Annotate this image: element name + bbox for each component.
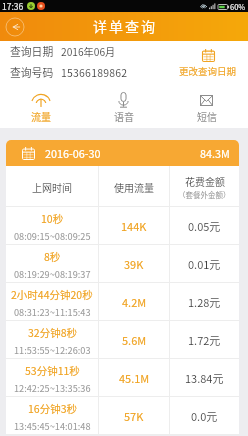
staticText: 57K <box>124 408 144 424</box>
staticText: 16分钟3秒 <box>28 401 77 416</box>
staticText: 0.05元 <box>188 218 221 234</box>
staticText: 53分钟11秒 <box>25 363 80 378</box>
button[interactable]: 32分钟8秒 <box>6 321 239 359</box>
staticText: 1.72元 <box>188 332 221 348</box>
staticText: 流量 <box>31 109 51 123</box>
button[interactable]: 流量 <box>0 81 82 128</box>
staticText: 2016-06-30 <box>45 145 101 161</box>
staticText: 语音 <box>114 109 134 123</box>
staticText: 13.84元 <box>185 370 224 386</box>
staticText: 84.3M <box>200 145 230 161</box>
staticText: 32分钟8秒 <box>28 325 77 340</box>
button[interactable]: 2016-06-30 <box>6 140 239 166</box>
button[interactable]: 53分钟11秒 <box>6 359 239 397</box>
button[interactable]: 语音 <box>82 81 165 128</box>
staticText: 2小时44分钟20秒 <box>11 287 93 302</box>
staticText: 更改查询日期 <box>179 64 237 78</box>
staticText: 15366189862 <box>61 65 128 80</box>
staticText: 查询号码 <box>10 64 54 80</box>
staticText: 查询日期 <box>10 43 54 59</box>
staticText: （套餐外金额） <box>178 189 231 200</box>
staticText: 10秒 <box>41 211 64 226</box>
staticText: 0.01元 <box>188 256 221 272</box>
button[interactable]: 10秒 <box>6 207 239 245</box>
staticText: 08:19:29~08:19:37 <box>14 267 91 280</box>
button[interactable]: Back <box>4 16 26 38</box>
staticText: 45.1M <box>119 370 150 386</box>
button[interactable]: 2小时44分钟20秒 <box>6 283 239 321</box>
staticText: 使用流量 <box>114 180 154 194</box>
staticText: 1.28元 <box>188 294 221 310</box>
button[interactable]: 8秒 <box>6 245 239 283</box>
staticText: 2016年06月 <box>61 44 116 59</box>
staticText: 08:09:15~08:09:25 <box>14 229 91 242</box>
staticText: 08:31:23~11:15:43 <box>14 305 91 318</box>
staticText: 短信 <box>197 109 217 123</box>
staticText: 5.6M <box>122 332 147 348</box>
button[interactable]: 更改查询日期 <box>177 48 239 79</box>
staticText: 13:45:45~14:01:48 <box>14 419 91 432</box>
staticText: 60% <box>230 1 246 12</box>
staticText: 144K <box>121 218 147 234</box>
staticText: 4.2M <box>122 294 147 310</box>
staticText: 花费金额 <box>185 174 225 188</box>
staticText: 12:42:25~13:35:36 <box>14 381 91 394</box>
staticText: 17:36 <box>2 0 24 12</box>
staticText: 8秒 <box>44 249 61 264</box>
staticText: 0.0元 <box>191 408 218 424</box>
staticText: 上网时间 <box>32 180 72 194</box>
staticText: 11:53:55~12:26:03 <box>14 343 91 356</box>
staticText: 详单查询 <box>93 16 157 36</box>
button[interactable]: 16分钟3秒 <box>6 397 239 435</box>
button[interactable]: 短信 <box>165 81 248 128</box>
staticText: 39K <box>124 256 144 272</box>
